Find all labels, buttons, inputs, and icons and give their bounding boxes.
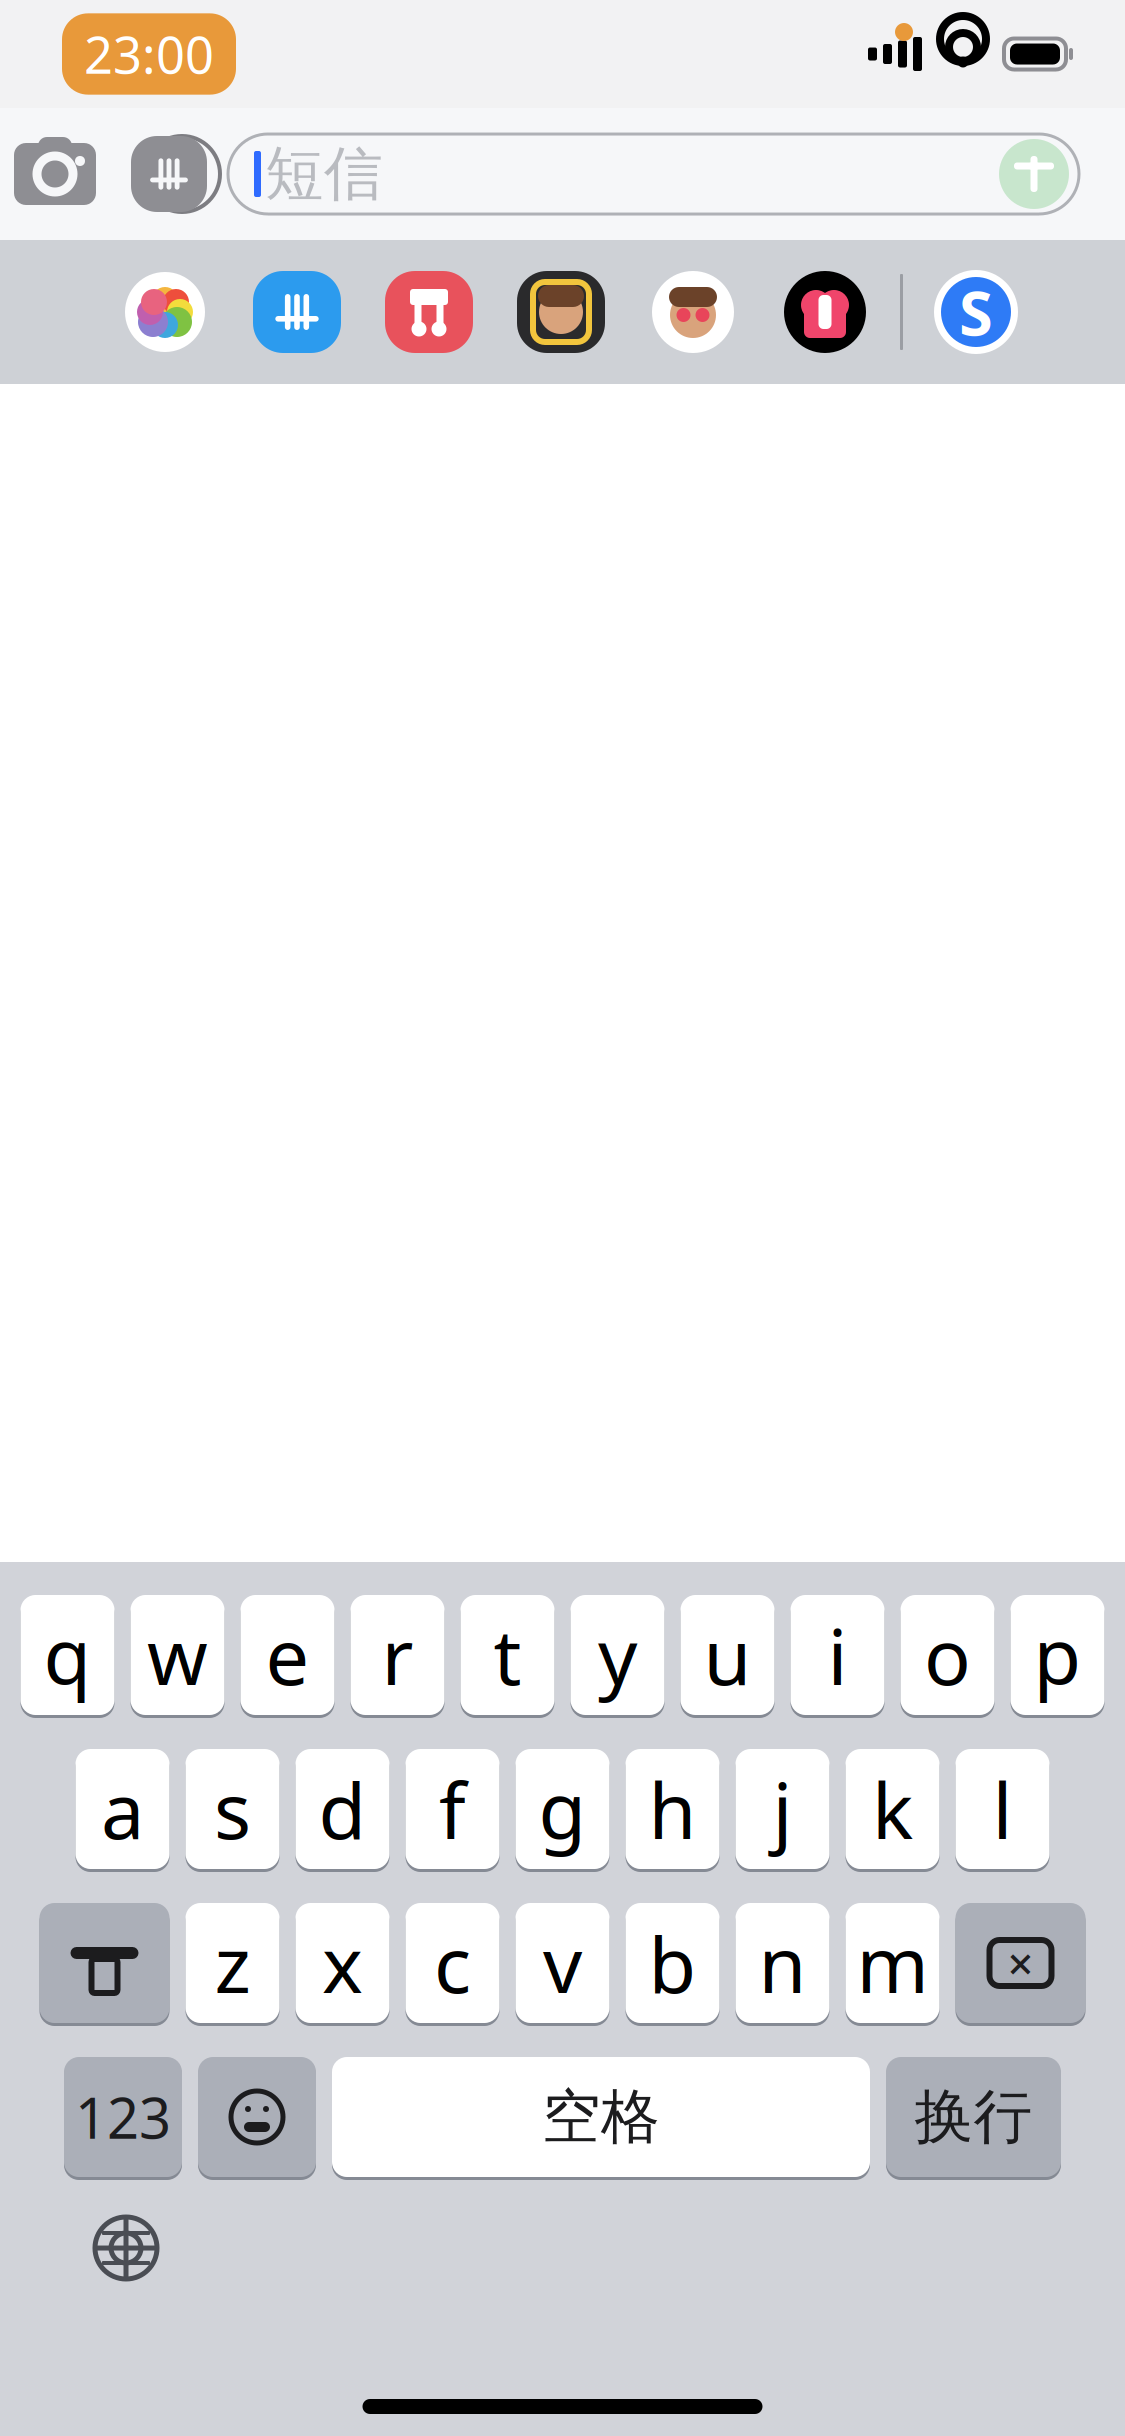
button[interactable]: Music (370, 266, 488, 358)
button[interactable]: p (1010, 1592, 1104, 1718)
button[interactable]: Memoji (502, 266, 620, 358)
button[interactable]: Photos (106, 266, 224, 358)
staticText: k (872, 1758, 913, 1860)
button[interactable]: Shift (39, 1900, 169, 2026)
staticText: h (648, 1758, 696, 1860)
staticText: x (322, 1912, 363, 2014)
staticText: 23:00 (84, 20, 214, 88)
button[interactable]: Shazam (917, 266, 1035, 358)
button[interactable]: Emoji (198, 2054, 316, 2180)
button[interactable]: 空格 (332, 2054, 870, 2180)
button[interactable]: e (240, 1592, 334, 1718)
staticText: 短信 (265, 138, 383, 210)
button[interactable]: v (515, 1900, 609, 2026)
staticText: 123 (75, 2080, 171, 2154)
staticText: s (214, 1758, 251, 1860)
button[interactable]: w (130, 1592, 224, 1718)
staticText: j (772, 1758, 792, 1860)
staticText: 空格 (542, 2081, 660, 2153)
button[interactable]: Memoji Stickers (634, 266, 752, 358)
staticText: 换行 (914, 2081, 1032, 2153)
button[interactable]: o (900, 1592, 994, 1718)
button[interactable]: c (405, 1900, 499, 2026)
staticText: d (318, 1758, 366, 1860)
button[interactable]: Send (995, 135, 1073, 213)
staticText: n (758, 1912, 806, 2014)
staticText: b (648, 1912, 696, 2014)
button[interactable]: App Store (238, 266, 356, 358)
staticText: f (439, 1758, 466, 1860)
button[interactable]: r (350, 1592, 444, 1718)
button[interactable]: g (515, 1746, 609, 1872)
button[interactable]: Next keyboard (66, 2198, 186, 2298)
button[interactable]: 换行 (886, 2054, 1061, 2180)
button[interactable]: i (790, 1592, 884, 1718)
button[interactable]: x (295, 1900, 389, 2026)
staticText: × (1007, 1933, 1033, 1993)
button[interactable]: m (845, 1900, 939, 2026)
button[interactable]: Digital Touch (766, 266, 884, 358)
button[interactable]: Delete (955, 1900, 1085, 2026)
staticText: o (924, 1604, 971, 1706)
button[interactable]: q (20, 1592, 114, 1718)
staticText: l (992, 1758, 1012, 1860)
staticText: t (493, 1604, 521, 1706)
button[interactable]: l (955, 1746, 1049, 1872)
button[interactable]: Camera (0, 119, 110, 229)
staticText: p (1033, 1604, 1081, 1706)
button[interactable]: k (845, 1746, 939, 1872)
button[interactable]: u (680, 1592, 774, 1718)
staticText: g (538, 1758, 586, 1860)
button[interactable]: d (295, 1746, 389, 1872)
button[interactable]: z (185, 1900, 279, 2026)
staticText: y (598, 1604, 637, 1706)
staticText: q (43, 1604, 91, 1706)
button[interactable]: s (185, 1746, 279, 1872)
staticText: z (214, 1912, 250, 2014)
staticText: m (856, 1912, 928, 2014)
button[interactable]: Apps (110, 119, 228, 229)
staticText: c (434, 1912, 471, 2014)
staticText: r (381, 1604, 413, 1706)
staticText: a (101, 1758, 144, 1860)
staticText: w (147, 1604, 208, 1706)
staticText: S (959, 271, 993, 353)
staticText: i (827, 1604, 847, 1706)
staticText: u (703, 1604, 751, 1706)
button[interactable]: b (625, 1900, 719, 2026)
button[interactable]: t (460, 1592, 554, 1718)
button[interactable]: j (735, 1746, 829, 1872)
button[interactable]: f (405, 1746, 499, 1872)
button[interactable]: Numbers (64, 2054, 182, 2180)
staticText: e (265, 1604, 309, 1706)
button[interactable]: h (625, 1746, 719, 1872)
button[interactable]: y (570, 1592, 664, 1718)
button[interactable]: n (735, 1900, 829, 2026)
button[interactable]: a (75, 1746, 169, 1872)
staticText: v (543, 1912, 582, 2014)
